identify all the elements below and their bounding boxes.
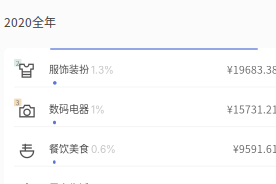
button[interactable]: 居家生活 — [4, 167, 276, 184]
staticText: 1% — [91, 104, 105, 116]
button[interactable]: 2 — [4, 48, 276, 88]
button[interactable]: 3 — [4, 88, 276, 127]
staticText: 居家生活 — [49, 181, 89, 184]
staticText: 2020全年 — [4, 13, 56, 30]
staticText: 3 — [16, 97, 20, 107]
staticText: 服饰装扮 — [49, 62, 89, 76]
staticText: 0.6% — [91, 143, 116, 155]
staticText: 2 — [16, 58, 20, 68]
staticText: ¥9591.61 — [233, 141, 276, 156]
staticText: ¥19683.38 — [227, 62, 276, 77]
staticText: ¥15731.21 — [227, 101, 276, 116]
button[interactable]: 餐饮美食 — [4, 127, 276, 167]
staticText: 餐饮美食 — [49, 141, 89, 155]
staticText: 数码电器 — [49, 101, 89, 116]
staticText: 1.3% — [91, 64, 114, 76]
